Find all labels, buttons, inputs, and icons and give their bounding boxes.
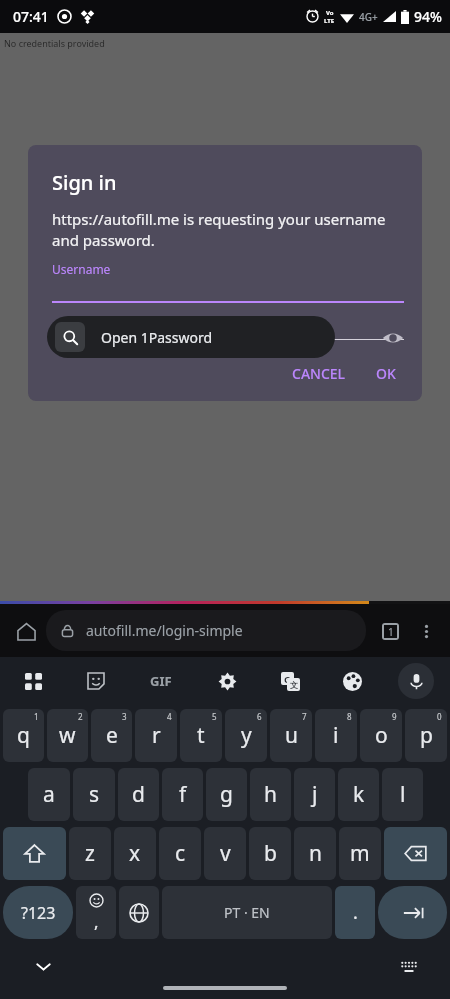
button[interactable]: CANCEL — [284, 358, 354, 389]
button[interactable]: s — [73, 768, 115, 821]
button[interactable]: b — [249, 827, 291, 880]
button[interactable]: f — [162, 768, 203, 821]
staticText: GIF — [150, 672, 172, 690]
staticText: t — [197, 721, 205, 750]
staticText: , — [94, 910, 99, 933]
button[interactable]: d — [118, 768, 159, 821]
button[interactable]: PT · EN — [162, 886, 332, 939]
staticText: g — [220, 780, 233, 809]
button[interactable]: k — [338, 768, 379, 821]
button[interactable]: Switch language — [119, 886, 159, 939]
button[interactable]: n — [294, 827, 336, 880]
button[interactable]: w — [47, 709, 88, 762]
staticText: h — [264, 780, 277, 809]
staticText: 文 — [290, 680, 298, 690]
button[interactable]: Stickers — [79, 664, 113, 698]
staticText: 1 — [388, 625, 394, 638]
staticText: Vo — [326, 9, 334, 17]
button[interactable]: Clipboard grid — [16, 664, 50, 698]
staticText: . — [353, 900, 358, 925]
button[interactable]: l — [382, 768, 423, 821]
staticText: LTE — [324, 17, 335, 25]
button[interactable]: autofill.me/login-simple — [46, 610, 366, 651]
staticText: No credentials provided — [4, 37, 105, 49]
button[interactable]: j — [294, 768, 335, 821]
staticText: q — [17, 721, 30, 750]
staticText: 5 — [212, 711, 217, 722]
button[interactable]: GIF — [141, 661, 181, 701]
staticText: n — [309, 839, 322, 868]
button[interactable]: c — [159, 827, 201, 880]
button[interactable]: Translate — [273, 664, 307, 698]
staticText: k — [353, 780, 365, 809]
staticText: i — [333, 721, 339, 750]
staticText: w — [59, 721, 76, 750]
button[interactable]: i — [315, 709, 357, 762]
staticText: b — [264, 839, 277, 868]
staticText: 9 — [392, 711, 397, 722]
button[interactable]: a — [28, 768, 70, 821]
staticText: 8 — [347, 711, 352, 722]
staticText: 4G+ — [359, 10, 378, 24]
button[interactable]: Settings — [210, 664, 244, 698]
staticText: j — [312, 780, 318, 809]
button[interactable]: OK — [368, 358, 404, 389]
staticText: Sign in — [52, 169, 117, 196]
staticText: 7 — [302, 711, 307, 722]
staticText: e — [106, 721, 118, 750]
button[interactable]: . — [335, 886, 375, 939]
button[interactable]: y — [225, 709, 267, 762]
button[interactable]: o — [360, 709, 402, 762]
staticText: Open 1Password — [101, 328, 213, 347]
staticText: https://autofill.me is requesting your u… — [52, 209, 404, 251]
staticText: 3 — [122, 711, 127, 722]
staticText: m — [350, 839, 370, 868]
button[interactable]: Hide keyboard — [30, 953, 56, 979]
button[interactable]: Voice input — [398, 663, 434, 699]
button[interactable]: Open 1Password — [47, 316, 335, 358]
button[interactable]: v — [204, 827, 246, 880]
button[interactable]: r — [135, 709, 177, 762]
button[interactable]: Enter — [378, 886, 447, 939]
button[interactable]: p — [405, 709, 447, 762]
staticText: 6 — [257, 711, 262, 722]
staticText: y — [241, 721, 252, 750]
button[interactable]: Backspace — [384, 827, 447, 880]
button[interactable]: Home — [6, 611, 46, 651]
button[interactable]: t — [180, 709, 222, 762]
staticText: c — [175, 839, 186, 868]
staticText: 0 — [437, 711, 442, 722]
button[interactable]: Emoji and comma — [76, 886, 116, 939]
staticText: p — [420, 721, 433, 750]
button[interactable]: u — [270, 709, 312, 762]
staticText: d — [132, 780, 145, 809]
staticText: l — [400, 780, 406, 809]
button[interactable]: Shift — [3, 827, 66, 880]
staticText: OK — [376, 364, 396, 383]
button[interactable]: Show password — [382, 327, 404, 349]
staticText: autofill.me/login-simple — [86, 621, 243, 640]
staticText: f — [179, 780, 187, 809]
staticText: 94% — [414, 7, 442, 26]
staticText: 1 — [34, 711, 39, 722]
button[interactable]: More options — [408, 613, 444, 649]
button[interactable]: z — [69, 827, 111, 880]
staticText: o — [375, 721, 388, 750]
staticText: ?123 — [21, 902, 56, 924]
staticText: G — [284, 673, 291, 685]
staticText: r — [152, 721, 161, 750]
button[interactable]: Change keyboard — [396, 953, 422, 979]
staticText: 2 — [78, 711, 83, 722]
button[interactable]: x — [114, 827, 156, 880]
button[interactable]: Tabs — [372, 613, 408, 649]
staticText: a — [43, 780, 55, 809]
staticText: v — [220, 839, 231, 868]
button[interactable]: h — [250, 768, 291, 821]
staticText: PT · EN — [224, 903, 270, 922]
button[interactable]: g — [206, 768, 247, 821]
button[interactable]: q — [3, 709, 44, 762]
button[interactable]: e — [91, 709, 132, 762]
button[interactable]: m — [339, 827, 381, 880]
button[interactable]: Themes — [335, 664, 369, 698]
button[interactable]: ?123 — [3, 886, 73, 939]
